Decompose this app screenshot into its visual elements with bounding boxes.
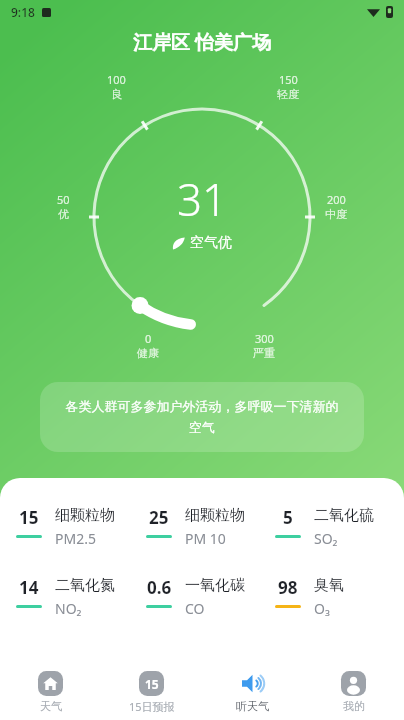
staticText: 空气优 xyxy=(190,234,232,252)
button[interactable]: 15日预报 xyxy=(101,668,202,717)
staticText: 我的 xyxy=(343,699,365,713)
button[interactable]: 98 xyxy=(267,576,396,618)
staticText: 200 xyxy=(327,192,346,207)
staticText: 天气 xyxy=(40,699,62,713)
staticText: 二氧化硫 xyxy=(314,506,374,525)
staticText: 9:18 xyxy=(11,4,35,20)
button[interactable]: 听天气 xyxy=(202,668,303,716)
staticText: 江岸区 怡美广场 xyxy=(0,29,404,55)
staticText: 臭氧 xyxy=(314,576,344,595)
staticText: PM2.5 xyxy=(55,529,96,548)
button[interactable]: 天气 xyxy=(0,668,101,716)
staticText: 98 xyxy=(278,576,298,599)
button[interactable]: 5 xyxy=(267,506,396,548)
button[interactable]: 15 xyxy=(8,506,138,548)
button[interactable]: 25 xyxy=(138,506,267,548)
staticText: 5 xyxy=(283,506,293,529)
staticText: 14 xyxy=(19,576,39,599)
staticText: 严重 xyxy=(253,346,275,360)
staticText: 轻度 xyxy=(277,87,299,101)
staticText: 一氧化碳 xyxy=(185,576,245,595)
staticText: 300 xyxy=(255,331,274,346)
staticText: 听天气 xyxy=(236,699,269,713)
staticText: 二氧化氮 xyxy=(55,576,115,595)
staticText: 良 xyxy=(111,87,122,101)
staticText: 15 xyxy=(19,506,39,529)
staticText: 中度 xyxy=(325,207,347,221)
button[interactable]: 0.6 xyxy=(138,576,267,618)
staticText: O₃ xyxy=(314,599,330,618)
staticText: 健康 xyxy=(137,346,159,360)
staticText: SO₂ xyxy=(314,529,338,548)
staticText: 优 xyxy=(58,207,69,221)
staticText: 0 xyxy=(145,331,152,346)
staticText: 细颗粒物 xyxy=(55,506,115,525)
button[interactable]: 14 xyxy=(8,576,138,618)
staticText: PM 10 xyxy=(185,529,226,548)
staticText: 各类人群可多参加户外活动，多呼吸一下清新的空气 xyxy=(62,398,342,436)
staticText: 15日预报 xyxy=(129,699,175,714)
staticText: 31 xyxy=(177,169,228,229)
staticText: NO₂ xyxy=(55,599,82,618)
staticText: 25 xyxy=(149,506,169,529)
staticText: 细颗粒物 xyxy=(185,506,245,525)
staticText: 0.6 xyxy=(147,576,172,599)
button[interactable]: 各类人群可多参加户外活动，多呼吸一下清新的空气 xyxy=(40,382,364,452)
staticText: 150 xyxy=(279,72,298,87)
staticText: 100 xyxy=(107,72,126,87)
staticText: 15 xyxy=(145,676,159,692)
staticText: 50 xyxy=(57,192,70,207)
staticText: CO xyxy=(185,599,205,618)
button[interactable]: 我的 xyxy=(303,668,404,716)
